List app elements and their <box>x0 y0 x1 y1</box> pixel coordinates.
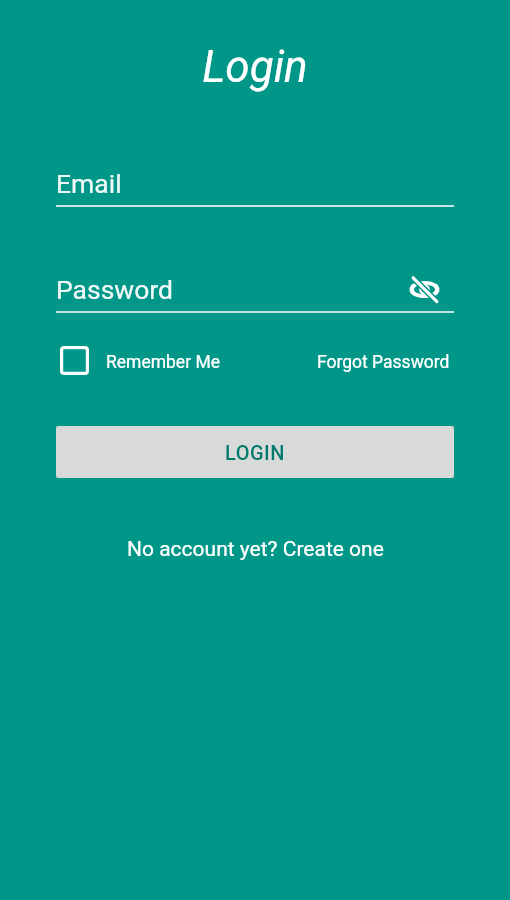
button[interactable]: Show password <box>402 267 446 311</box>
button[interactable]: No account yet? Create one <box>127 533 384 565</box>
staticText: Remember Me <box>106 352 220 373</box>
staticText: Login <box>0 41 510 93</box>
staticText: Forgot Password <box>317 352 450 373</box>
button[interactable]: Forgot Password <box>317 347 450 375</box>
staticText: Email <box>56 168 122 199</box>
button[interactable]: LOGIN <box>56 426 454 478</box>
staticText: No account yet? Create one <box>127 537 384 562</box>
button[interactable]: Password <box>56 269 454 313</box>
button[interactable]: Email <box>56 163 454 207</box>
staticText: Password <box>56 274 174 305</box>
button[interactable]: Remember Me <box>60 347 220 377</box>
staticText: LOGIN <box>225 441 285 464</box>
